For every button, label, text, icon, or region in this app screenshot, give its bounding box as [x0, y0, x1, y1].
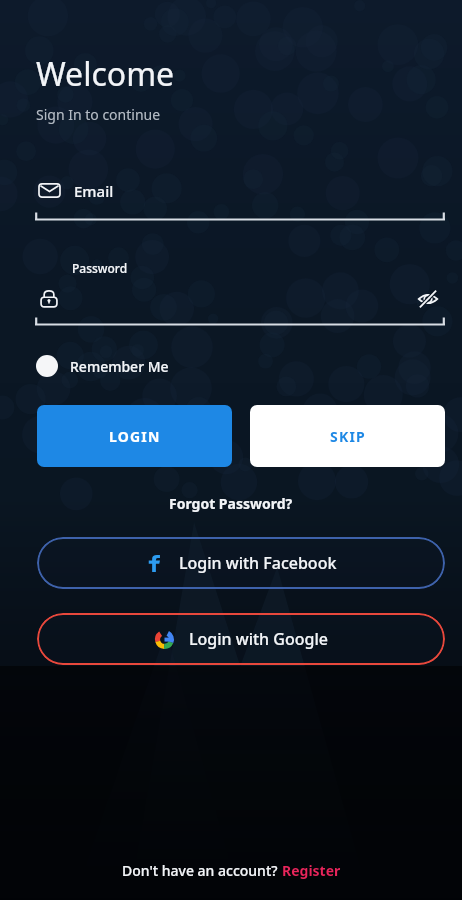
staticText: Don't have an account? — [122, 861, 282, 880]
button[interactable]: Email — [35, 180, 445, 222]
button[interactable]: Remember Me — [36, 355, 169, 377]
staticText: Register — [282, 861, 341, 880]
staticText: LOGIN — [109, 427, 161, 446]
staticText: Email — [74, 181, 114, 201]
staticText: SKIP — [330, 427, 366, 446]
button[interactable]: Don't have an account? — [122, 861, 341, 880]
button[interactable]: Forgot Password? — [159, 490, 303, 517]
button[interactable]: LOGIN — [37, 405, 232, 467]
staticText: Remember Me — [70, 357, 169, 376]
staticText: Forgot Password? — [169, 494, 293, 513]
button[interactable]: Toggle password visibility — [413, 284, 443, 314]
staticText: Login with Google — [189, 628, 328, 650]
button[interactable]: SKIP — [250, 405, 445, 467]
staticText: Login with Facebook — [179, 552, 337, 574]
button[interactable]: Password — [35, 260, 445, 327]
button[interactable]: Login with Facebook — [37, 537, 445, 589]
staticText: Sign In to continue — [36, 105, 161, 124]
staticText: Welcome — [36, 52, 175, 96]
button[interactable]: Login with Google — [37, 613, 445, 665]
staticText: Password — [72, 260, 128, 276]
